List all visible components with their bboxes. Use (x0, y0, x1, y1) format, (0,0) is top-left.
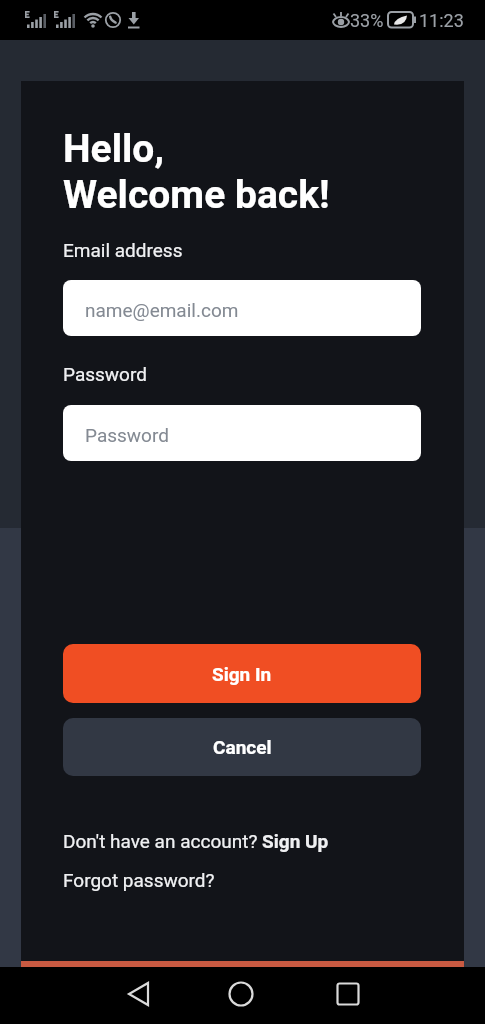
button[interactable]: Cancel (63, 718, 421, 776)
button[interactable] (312, 967, 382, 1024)
button[interactable]: Forgot password? (63, 869, 215, 891)
staticText: 33% (350, 10, 384, 31)
button[interactable]: Don't have an account? Sign Up (63, 830, 329, 852)
staticText: Sign In (212, 663, 272, 685)
staticText: 11:23 (419, 10, 464, 31)
button[interactable]: Sign In (63, 644, 421, 703)
staticText: Email address (63, 239, 183, 261)
staticText: Password (85, 424, 169, 446)
button[interactable] (110, 967, 180, 1024)
button[interactable] (207, 967, 277, 1024)
button[interactable]: Password (63, 405, 421, 461)
staticText: Password (63, 363, 147, 385)
staticText: Forgot password? (63, 869, 215, 891)
staticText: Cancel (213, 736, 272, 758)
staticText: Don't have an account? Sign Up (63, 830, 329, 852)
button[interactable]: name@email.com (63, 280, 421, 336)
staticText: Hello, Welcome back! (63, 126, 330, 218)
staticText: name@email.com (85, 299, 239, 321)
